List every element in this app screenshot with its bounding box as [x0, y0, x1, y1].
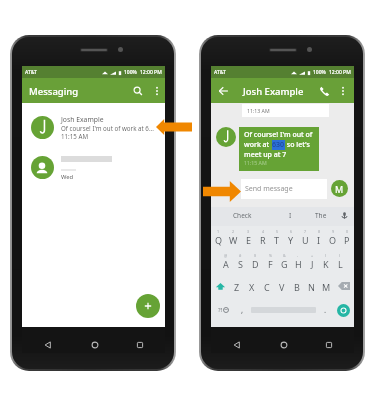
staticText: C — [264, 281, 270, 293]
staticText: # — [239, 253, 242, 258]
staticText: Of course! I'm out of work at 6... — [61, 124, 154, 132]
button[interactable]: 0 — [340, 226, 354, 250]
button[interactable]: X — [244, 274, 259, 298]
staticText: + — [311, 253, 314, 258]
button[interactable]: Back — [230, 338, 244, 352]
staticText: O — [329, 234, 337, 246]
staticText: Messaging — [29, 85, 79, 98]
staticText: 630 — [272, 140, 285, 150]
button[interactable]: B — [289, 274, 304, 298]
button[interactable]: Shift — [211, 274, 229, 298]
button[interactable]: Backspace — [334, 274, 354, 298]
button[interactable]: Send message — [241, 179, 327, 199]
button[interactable]: ( — [319, 250, 333, 274]
button[interactable]: 3 — [241, 226, 256, 250]
staticText: B — [294, 281, 300, 293]
button[interactable]: 2 — [226, 226, 241, 250]
staticText: meet up at 7 — [244, 150, 287, 160]
button[interactable]: + — [305, 250, 319, 274]
button[interactable]: Recents — [322, 338, 336, 352]
staticText: AT&T — [214, 69, 226, 76]
staticText: A — [223, 258, 229, 270]
button[interactable]: Contact — [331, 180, 348, 197]
button[interactable]: ) — [333, 250, 347, 274]
button[interactable]: 4 — [256, 226, 270, 250]
button[interactable]: @ — [218, 250, 233, 274]
button[interactable]: More options — [149, 83, 165, 99]
staticText: V — [279, 281, 285, 293]
button[interactable]: 6 — [284, 226, 298, 250]
staticText: T — [274, 234, 280, 246]
staticText: N — [308, 281, 315, 293]
button[interactable]: . — [318, 298, 332, 322]
staticText: ?! — [218, 306, 223, 314]
button[interactable]: Call — [317, 83, 333, 99]
button[interactable]: - — [291, 250, 305, 274]
staticText: Wed — [61, 173, 74, 181]
staticText: 9 — [332, 229, 335, 234]
staticText: 11:13 AM — [247, 107, 270, 114]
button[interactable]: & — [277, 250, 291, 274]
button[interactable]: , — [235, 298, 249, 322]
staticText: 11:15 AM — [244, 159, 267, 166]
button[interactable]: 7 — [298, 226, 312, 250]
staticText: Send message — [245, 184, 293, 194]
staticText: 7 — [304, 229, 307, 234]
staticText: D — [252, 258, 259, 270]
button[interactable]: % — [263, 250, 277, 274]
staticText: The — [315, 211, 327, 220]
button[interactable]: Recents — [133, 338, 147, 352]
staticText: Josh Example — [243, 85, 304, 98]
staticText: I — [289, 211, 292, 220]
staticText: , — [241, 304, 244, 315]
staticText: 12:00 PM — [329, 69, 351, 76]
staticText: Q — [215, 234, 223, 246]
button[interactable]: Josh Example — [22, 107, 165, 147]
staticText: H — [295, 258, 302, 270]
button[interactable]: $ — [248, 250, 263, 274]
button[interactable]: Z — [229, 274, 244, 298]
staticText: 3 — [247, 229, 250, 234]
staticText: L — [338, 258, 343, 270]
button[interactable]: Search — [130, 83, 146, 99]
button[interactable]: Home — [88, 338, 102, 352]
button[interactable]: 8 — [312, 226, 326, 250]
button[interactable]: # — [233, 250, 248, 274]
button[interactable]: 5 — [270, 226, 284, 250]
staticText: $ — [254, 253, 257, 258]
staticText: S — [238, 258, 243, 270]
button[interactable]: Wed — [22, 147, 165, 187]
staticText: % — [269, 253, 272, 258]
staticText: 100% — [124, 69, 137, 76]
staticText: 100% — [313, 69, 326, 76]
button[interactable]: 9 — [326, 226, 340, 250]
button[interactable]: N — [304, 274, 319, 298]
button[interactable]: New conversation — [136, 294, 160, 318]
button[interactable]: M — [319, 274, 334, 298]
staticText: 5 — [276, 229, 279, 234]
button[interactable]: Send — [332, 298, 354, 322]
staticText: 6 — [290, 229, 293, 234]
staticText: ) — [339, 253, 341, 258]
button[interactable]: 1 — [211, 226, 226, 250]
staticText: J — [311, 258, 314, 270]
staticText: R — [260, 234, 266, 246]
button[interactable]: Back — [41, 338, 55, 352]
staticText: I — [317, 234, 321, 246]
button[interactable]: Back — [216, 83, 232, 99]
staticText: work at — [244, 140, 272, 150]
staticText: & — [283, 253, 286, 258]
button[interactable]: Home — [277, 338, 291, 352]
staticText: E — [246, 234, 252, 246]
staticText: K — [323, 258, 329, 270]
button[interactable]: C — [259, 274, 274, 298]
staticText: F — [268, 258, 273, 270]
staticText: so let's — [285, 140, 310, 150]
button[interactable]: V — [274, 274, 289, 298]
button[interactable]: Voice input — [335, 206, 354, 225]
staticText: 11:15 AM — [61, 132, 88, 140]
staticText: Check — [233, 211, 252, 220]
button[interactable]: Symbols — [211, 298, 235, 322]
button[interactable]: More options — [335, 83, 351, 99]
